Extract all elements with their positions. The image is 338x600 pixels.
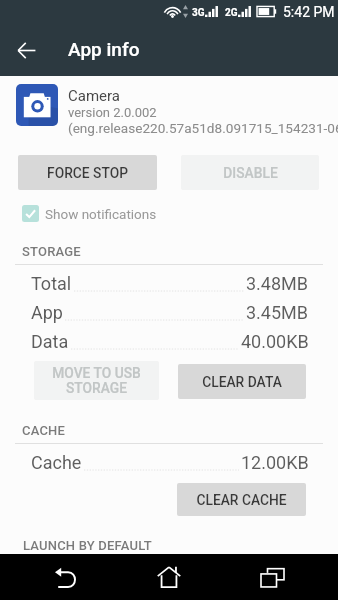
staticText: App (31, 302, 63, 323)
button[interactable]: App (0, 302, 338, 330)
staticText: FORCE STOP (47, 165, 128, 181)
button[interactable]: Recent apps (238, 554, 306, 600)
staticText: CACHE (22, 423, 66, 438)
button[interactable]: Back (32, 554, 100, 600)
staticText: Data (31, 331, 69, 352)
staticText: 12.00KB (241, 452, 309, 473)
staticText: LAUNCH BY DEFAULT (23, 538, 152, 553)
staticText: 3.48MB (246, 273, 309, 294)
button[interactable]: CLEAR DATA (178, 364, 306, 399)
button[interactable]: FORCE STOP (18, 155, 157, 190)
staticText: CLEAR DATA (202, 374, 282, 390)
staticText: CLEAR CACHE (196, 492, 287, 508)
staticText: Cache (31, 452, 82, 473)
button[interactable]: Home (135, 554, 203, 600)
button[interactable]: Total (0, 273, 338, 301)
staticText: version 2.0.002 (68, 105, 157, 120)
staticText: 40.00KB (241, 331, 309, 352)
button[interactable]: DISABLE (181, 155, 319, 190)
button[interactable]: Data (0, 331, 338, 359)
staticText: Camera (68, 87, 120, 105)
staticText: Total (31, 273, 72, 294)
staticText: Show notifications (45, 206, 157, 222)
button[interactable]: CLEAR CACHE (177, 483, 306, 516)
staticText: MOVE TO USB STORAGE (52, 365, 141, 397)
button[interactable]: Cache (0, 452, 338, 480)
staticText: 5:42 PM (283, 4, 335, 20)
staticText: 3.45MB (246, 302, 309, 323)
staticText: STORAGE (22, 244, 81, 259)
staticText: DISABLE (223, 165, 278, 181)
staticText: 2G (225, 7, 238, 19)
staticText: (eng.release220.57a51d8.091715_154231-06… (68, 120, 338, 136)
staticText: 3G (192, 7, 205, 19)
button[interactable]: MOVE TO USB STORAGE (34, 361, 159, 400)
staticText: App info (68, 38, 140, 60)
button[interactable]: Back (4, 28, 48, 72)
button[interactable]: Show notifications (0, 201, 338, 227)
